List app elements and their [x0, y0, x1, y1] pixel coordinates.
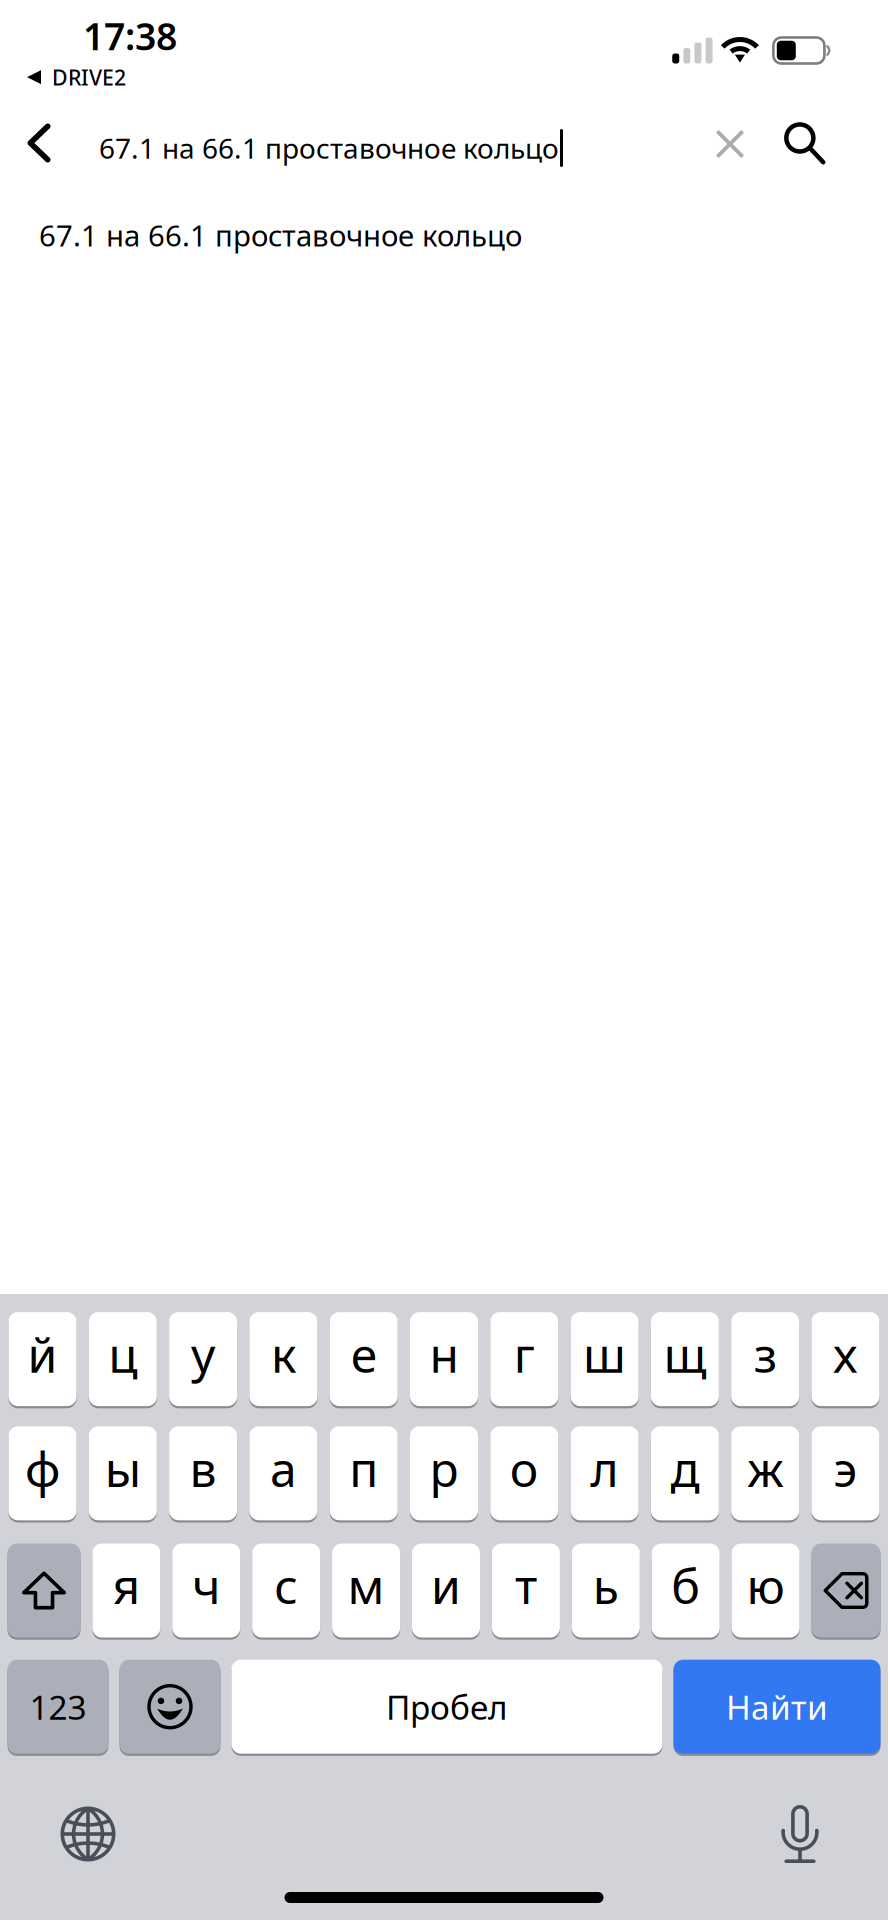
- button[interactable]: з: [731, 1311, 799, 1407]
- button[interactable]: б: [652, 1542, 720, 1639]
- button[interactable]: и: [412, 1542, 480, 1639]
- button[interactable]: Dictate: [756, 1790, 844, 1878]
- button[interactable]: ч: [172, 1542, 240, 1639]
- button[interactable]: т: [492, 1542, 560, 1639]
- button[interactable]: й: [8, 1311, 76, 1407]
- staticText: д: [670, 1436, 699, 1500]
- staticText: п: [349, 1436, 378, 1500]
- staticText: л: [591, 1436, 619, 1500]
- button[interactable]: Back: [0, 97, 85, 189]
- staticText: р: [429, 1436, 458, 1500]
- staticText: Пробел: [386, 1685, 508, 1729]
- staticText: а: [270, 1436, 297, 1500]
- button[interactable]: е: [330, 1311, 398, 1407]
- button[interactable]: Search: [673, 1659, 880, 1755]
- button[interactable]: к: [249, 1311, 317, 1407]
- staticText: х: [833, 1322, 858, 1386]
- staticText: ц: [108, 1322, 137, 1386]
- button[interactable]: г: [490, 1311, 558, 1407]
- staticText: й: [27, 1322, 57, 1386]
- button[interactable]: Shift: [7, 1542, 80, 1639]
- staticText: DRIVE2: [52, 63, 126, 91]
- button[interactable]: э: [811, 1425, 879, 1521]
- staticText: 17:38: [83, 11, 177, 61]
- button[interactable]: ц: [89, 1311, 157, 1407]
- staticText: т: [515, 1554, 537, 1617]
- button[interactable]: д: [651, 1425, 719, 1521]
- staticText: ю: [747, 1554, 785, 1617]
- button[interactable]: а: [249, 1425, 317, 1521]
- button[interactable]: Space: [231, 1659, 662, 1755]
- button[interactable]: Next keyboard: [44, 1790, 132, 1878]
- button[interactable]: х: [811, 1311, 879, 1407]
- button[interactable]: Clear text: [695, 109, 765, 179]
- staticText: у: [191, 1322, 215, 1386]
- button[interactable]: в: [169, 1425, 237, 1521]
- staticText: м: [348, 1554, 385, 1617]
- staticText: з: [754, 1322, 777, 1386]
- button[interactable]: Search: [769, 108, 841, 180]
- staticText: и: [431, 1554, 461, 1617]
- staticText: щ: [663, 1322, 706, 1386]
- staticText: б: [671, 1554, 700, 1617]
- button[interactable]: Delete: [811, 1542, 880, 1639]
- button[interactable]: у: [169, 1311, 237, 1407]
- button[interactable]: Numbers: [7, 1659, 108, 1755]
- staticText: ь: [593, 1554, 619, 1617]
- button[interactable]: ф: [8, 1425, 76, 1521]
- staticText: о: [510, 1436, 539, 1500]
- staticText: ы: [105, 1436, 141, 1500]
- staticText: г: [514, 1322, 535, 1386]
- staticText: я: [112, 1554, 140, 1617]
- button[interactable]: 67.1 на 66.1 проставочное кольцо: [0, 196, 888, 274]
- button[interactable]: л: [571, 1425, 639, 1521]
- button[interactable]: н: [410, 1311, 478, 1407]
- button[interactable]: о: [490, 1425, 558, 1521]
- button[interactable]: п: [330, 1425, 398, 1521]
- button[interactable]: м: [332, 1542, 400, 1639]
- button[interactable]: ж: [731, 1425, 799, 1521]
- staticText: ж: [747, 1436, 783, 1500]
- staticText: Найти: [726, 1685, 828, 1729]
- staticText: е: [351, 1322, 377, 1386]
- staticText: 67.1 на 66.1 проставочное кольцо: [39, 215, 522, 254]
- staticText: ш: [583, 1322, 626, 1386]
- button[interactable]: ы: [89, 1425, 157, 1521]
- staticText: ч: [192, 1554, 220, 1617]
- staticText: к: [271, 1322, 296, 1386]
- staticText: в: [190, 1436, 217, 1500]
- button[interactable]: я: [92, 1542, 160, 1639]
- button[interactable]: р: [410, 1425, 478, 1521]
- button[interactable]: ю: [732, 1542, 800, 1639]
- staticText: 67.1 на 66.1 проставочное кольцо: [99, 129, 559, 167]
- button[interactable]: с: [252, 1542, 320, 1639]
- button[interactable]: Emoji: [119, 1659, 220, 1755]
- staticText: с: [274, 1554, 298, 1617]
- button[interactable]: щ: [651, 1311, 719, 1407]
- button[interactable]: ь: [572, 1542, 640, 1639]
- staticText: э: [833, 1436, 857, 1500]
- staticText: 123: [29, 1685, 86, 1729]
- button[interactable]: ш: [571, 1311, 639, 1407]
- staticText: ф: [25, 1436, 60, 1500]
- staticText: н: [429, 1322, 458, 1386]
